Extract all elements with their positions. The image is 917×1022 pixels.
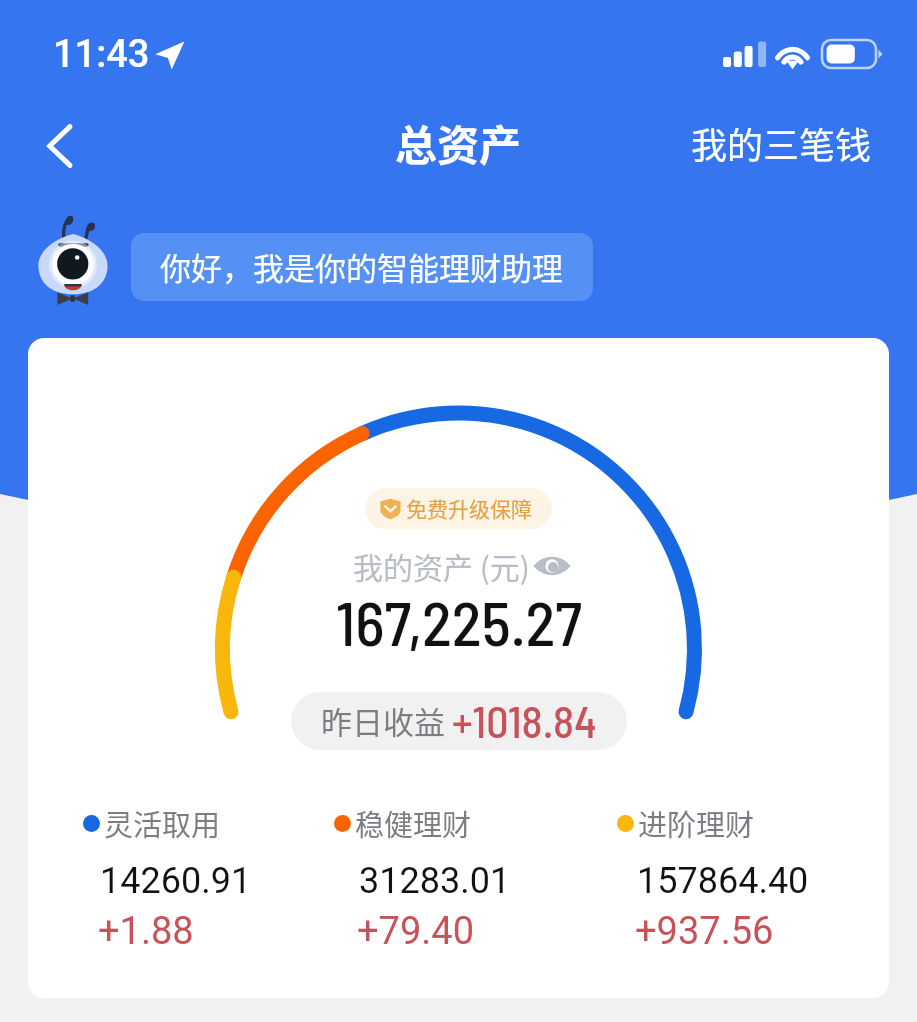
- staticText: 167,225.27: [336, 584, 582, 658]
- staticText: 你好，我是你的智能理财助理: [160, 244, 563, 289]
- staticText: +1.88: [98, 909, 194, 954]
- staticText: +1018.84: [452, 694, 597, 747]
- button[interactable]: Back: [32, 117, 90, 175]
- staticText: 31283.01: [359, 860, 511, 902]
- button[interactable]: 我的三笔钱: [691, 117, 917, 169]
- staticText: 我的资产 (元): [353, 544, 530, 587]
- staticText: 灵活取用: [104, 802, 221, 844]
- staticText: 我的三笔钱: [691, 117, 872, 169]
- staticText: 14260.91: [100, 860, 252, 902]
- staticText: 昨日收益: [321, 698, 445, 743]
- staticText: +79.40: [357, 909, 475, 954]
- button[interactable]: 灵活取用: [83, 802, 252, 954]
- staticText: 总资产: [395, 112, 522, 173]
- staticText: +937.56: [635, 909, 774, 954]
- staticText: 免费升级保障: [406, 493, 532, 523]
- button[interactable]: 昨日收益: [291, 692, 627, 750]
- button[interactable]: Toggle amount visibility: [531, 553, 573, 579]
- staticText: 进阶理财: [638, 802, 755, 844]
- staticText: 11:43: [53, 32, 150, 77]
- staticText: 157864.40: [637, 860, 809, 902]
- button[interactable]: 你好，我是你的智能理财助理: [131, 233, 593, 301]
- button[interactable]: 稳健理财: [334, 802, 511, 954]
- button[interactable]: 进阶理财: [617, 802, 809, 954]
- button[interactable]: 免费升级保障: [365, 488, 552, 529]
- staticText: 稳健理财: [355, 802, 472, 844]
